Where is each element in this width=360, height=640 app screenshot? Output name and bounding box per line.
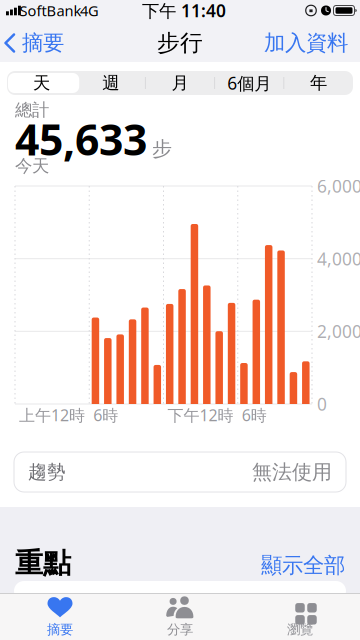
- staticText: 無法使用: [252, 460, 332, 484]
- staticText: 天: [33, 72, 50, 94]
- staticText: 步: [152, 137, 172, 161]
- staticText: 步行: [157, 29, 203, 57]
- staticText: 6,000: [317, 174, 360, 197]
- staticText: 0: [317, 392, 327, 415]
- button[interactable]: 分享: [130, 594, 230, 640]
- staticText: SoftBank: [19, 1, 81, 20]
- staticText: 摘要: [47, 621, 73, 638]
- staticText: 下午 11:40: [142, 0, 226, 22]
- staticText: 瀏覽: [287, 621, 313, 638]
- staticText: 趨勢: [28, 460, 66, 483]
- button[interactable]: 6個月: [215, 71, 284, 95]
- staticText: 顯示全部: [261, 552, 345, 578]
- staticText: 摘要: [22, 30, 64, 56]
- button[interactable]: 週: [76, 71, 145, 95]
- staticText: 4G: [80, 1, 99, 20]
- staticText: 分享: [167, 621, 193, 638]
- staticText: 年: [310, 72, 327, 94]
- staticText: 下午12時: [167, 404, 233, 426]
- button[interactable]: 瀏覽: [250, 594, 350, 640]
- button[interactable]: 趨勢: [14, 452, 346, 492]
- button[interactable]: 年: [284, 71, 353, 95]
- staticText: 今天: [15, 155, 49, 177]
- button[interactable]: 天: [7, 71, 76, 95]
- staticText: 週: [102, 72, 119, 94]
- staticText: 重點: [15, 546, 71, 580]
- staticText: 4,000: [317, 247, 360, 270]
- button[interactable]: 摘要: [4, 23, 64, 63]
- staticText: 上午12時: [19, 404, 85, 426]
- staticText: 6時: [242, 404, 267, 426]
- staticText: 6個月: [227, 71, 271, 94]
- staticText: 2,000: [317, 320, 360, 343]
- staticText: 總計: [15, 99, 49, 121]
- button[interactable]: 月: [145, 71, 215, 95]
- button[interactable]: 顯示全部: [261, 552, 345, 578]
- staticText: 6時: [93, 404, 118, 426]
- staticText: 45,633: [15, 111, 147, 167]
- staticText: 月: [171, 72, 188, 94]
- button[interactable]: 摘要: [10, 594, 110, 640]
- button[interactable]: 加入資料: [264, 23, 348, 63]
- staticText: 加入資料: [264, 30, 348, 56]
